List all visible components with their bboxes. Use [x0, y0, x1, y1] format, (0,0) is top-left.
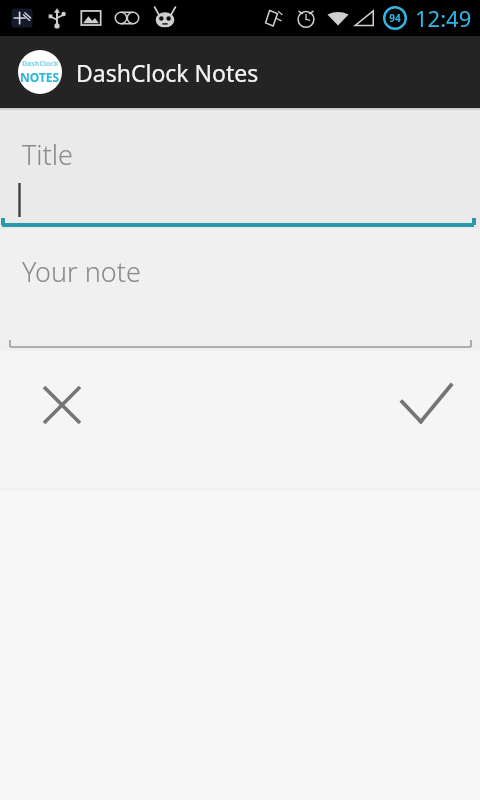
staticText: Title — [22, 136, 73, 173]
staticText: 94 — [389, 11, 401, 25]
button[interactable]: DashClock — [18, 50, 259, 94]
staticText: Your note — [22, 253, 141, 290]
button[interactable]: Cancel — [26, 369, 98, 441]
staticText: DashClock Notes — [76, 57, 259, 88]
button[interactable]: Title — [0, 112, 480, 229]
staticText: DashClock — [22, 59, 59, 69]
button[interactable]: Save — [390, 369, 462, 441]
button[interactable]: Your note — [0, 229, 480, 351]
staticText: 12:49 — [415, 3, 472, 33]
staticText: NOTES — [20, 69, 60, 85]
